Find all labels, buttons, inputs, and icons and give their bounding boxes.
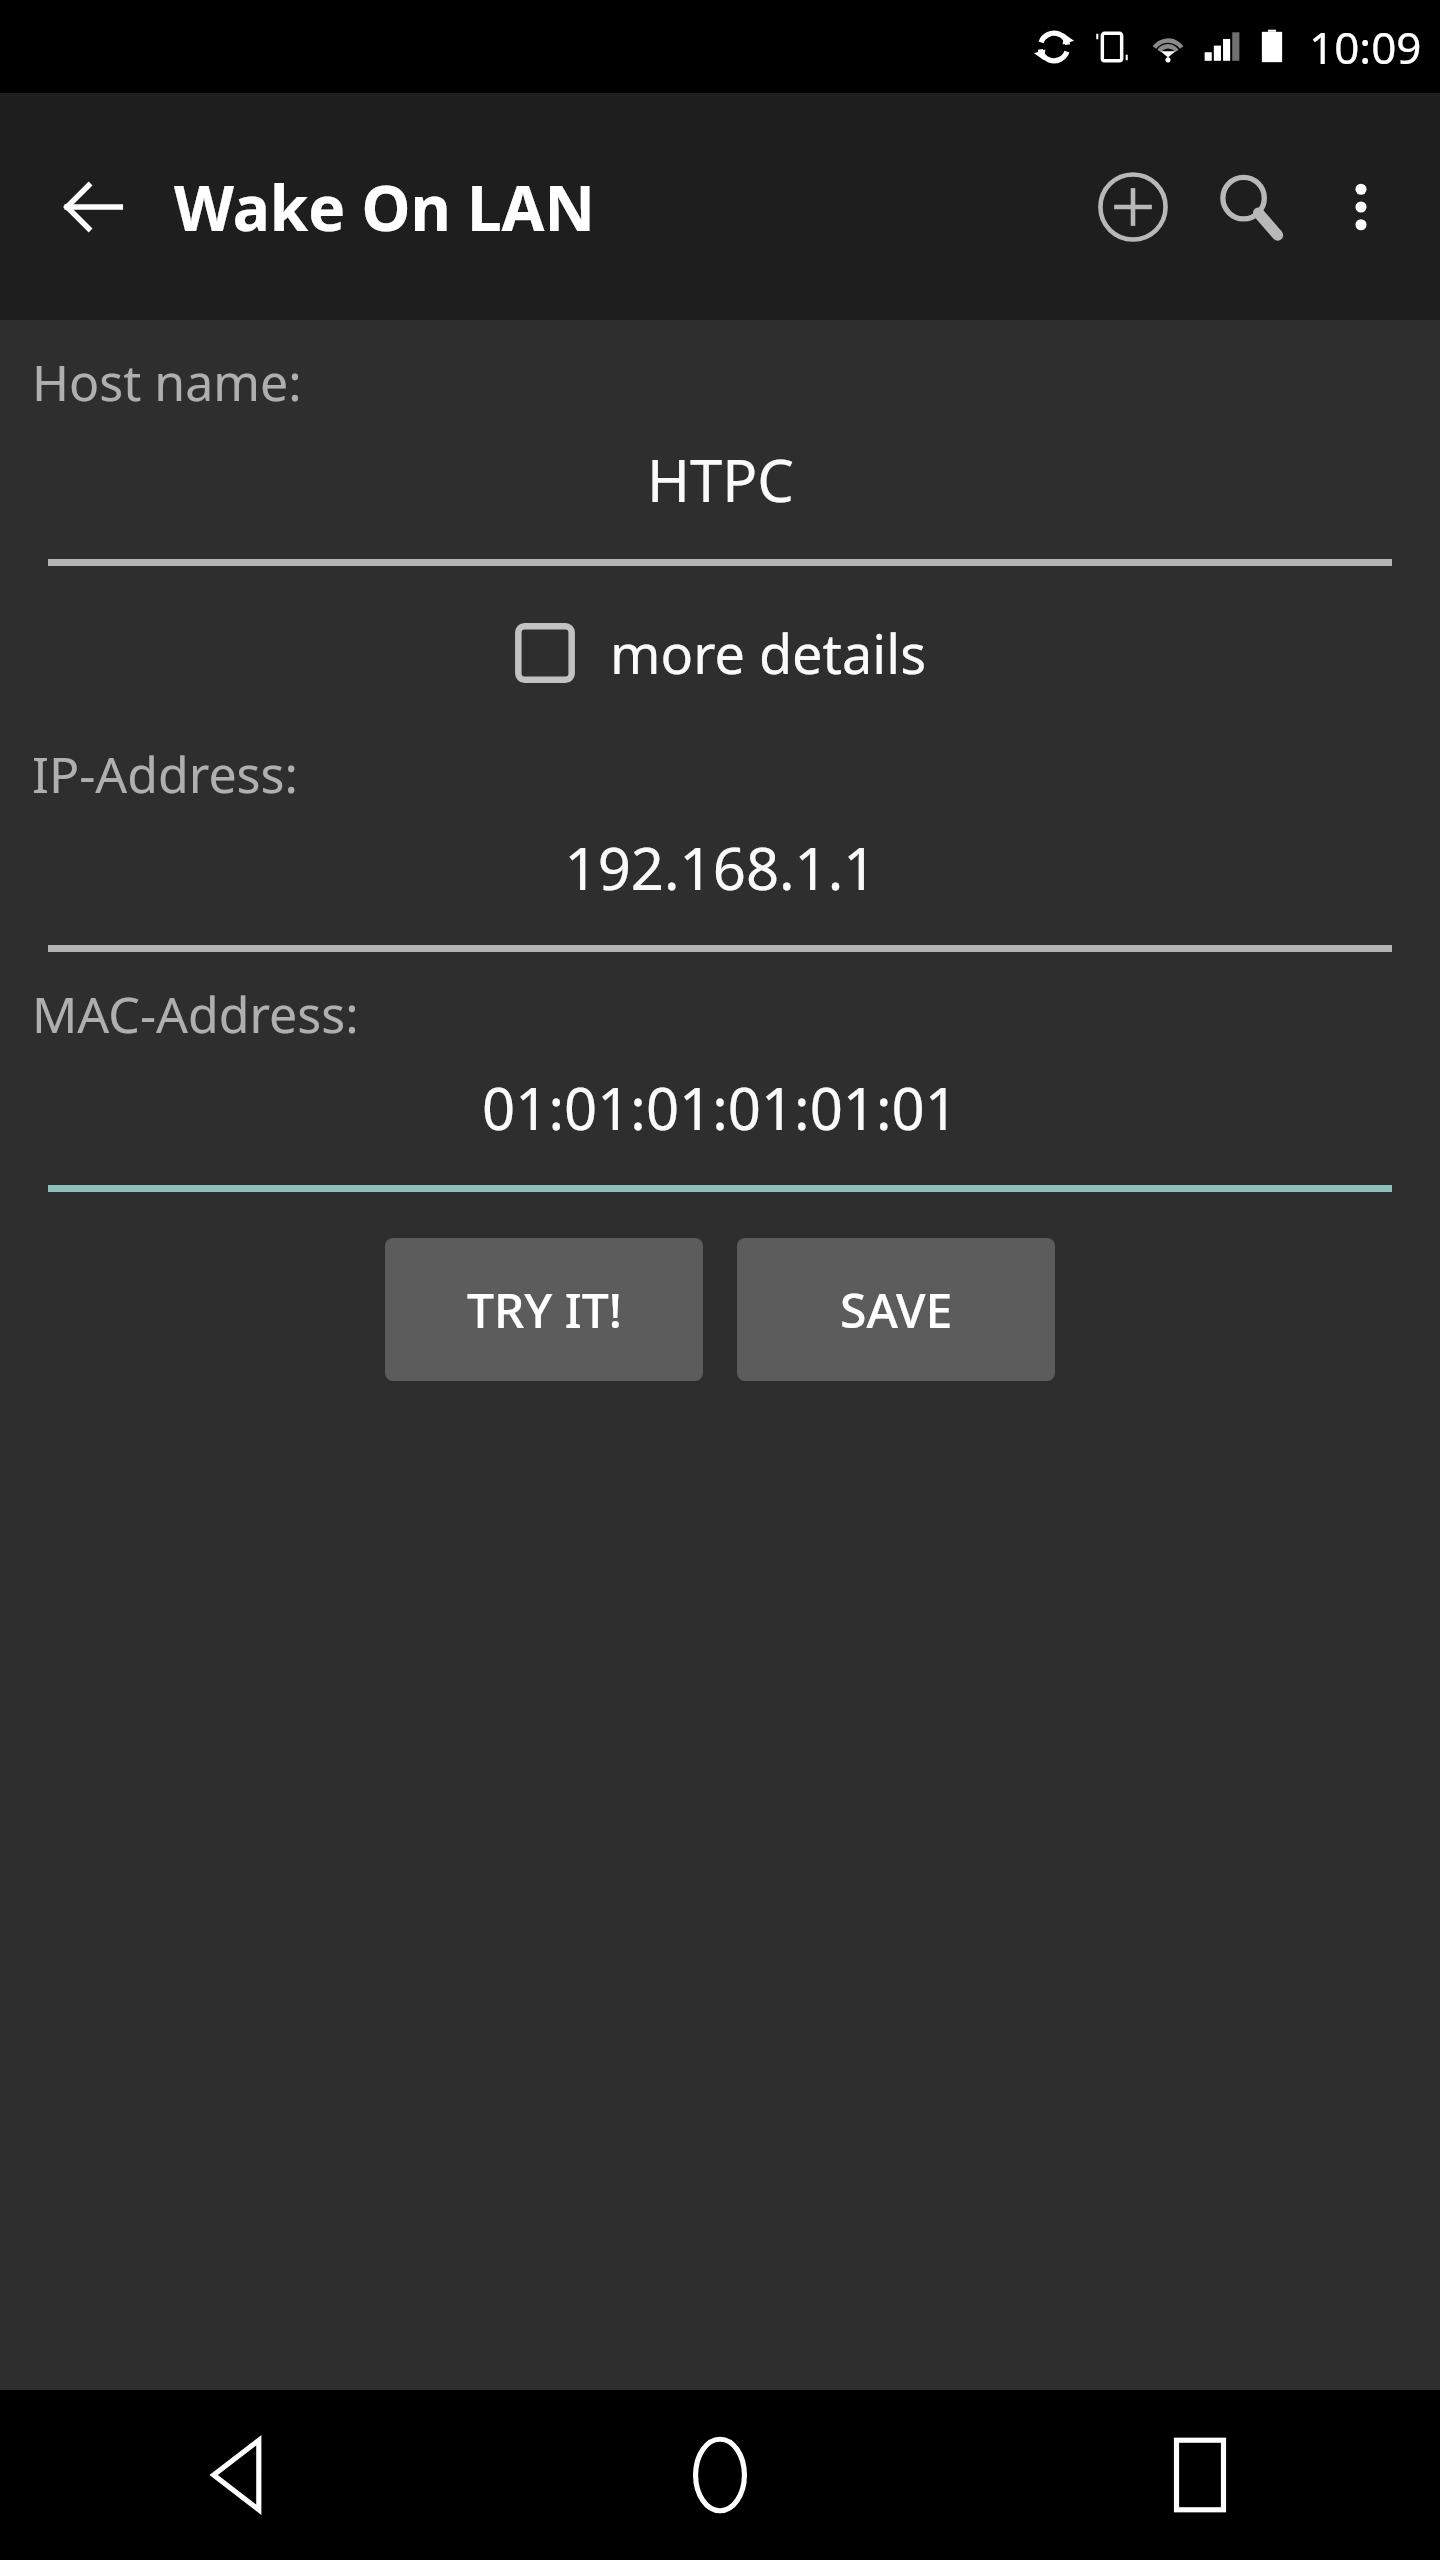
staticText: IP-Address: bbox=[32, 740, 298, 808]
button[interactable]: Home bbox=[480, 2390, 960, 2560]
staticText: 10:09 bbox=[1309, 17, 1422, 77]
button[interactable]: Search bbox=[1196, 152, 1306, 262]
staticText: TRY IT! bbox=[467, 1277, 622, 1342]
staticText: 192.168.1.1 bbox=[564, 828, 877, 907]
button[interactable]: 01:01:01:01:01:01 bbox=[48, 1068, 1392, 1147]
button[interactable]: TRY IT! bbox=[385, 1238, 703, 1381]
button[interactable]: more details bbox=[506, 610, 935, 696]
button[interactable]: Add bbox=[1078, 152, 1188, 262]
staticText: Wake On LAN bbox=[174, 165, 595, 249]
button[interactable]: SAVE bbox=[737, 1238, 1055, 1381]
button[interactable]: Back bbox=[50, 164, 136, 250]
staticText: Host name: bbox=[32, 348, 302, 416]
button[interactable]: Recent apps bbox=[960, 2390, 1440, 2560]
button[interactable]: More options bbox=[1306, 152, 1416, 262]
staticText: MAC-Address: bbox=[32, 980, 359, 1048]
staticText: HTPC bbox=[647, 440, 794, 519]
button[interactable]: Back bbox=[0, 2390, 480, 2560]
staticText: more details bbox=[610, 616, 927, 690]
button[interactable]: HTPC bbox=[48, 440, 1392, 519]
staticText: SAVE bbox=[840, 1277, 953, 1342]
button[interactable]: 192.168.1.1 bbox=[48, 828, 1392, 907]
staticText: 01:01:01:01:01:01 bbox=[482, 1068, 958, 1147]
